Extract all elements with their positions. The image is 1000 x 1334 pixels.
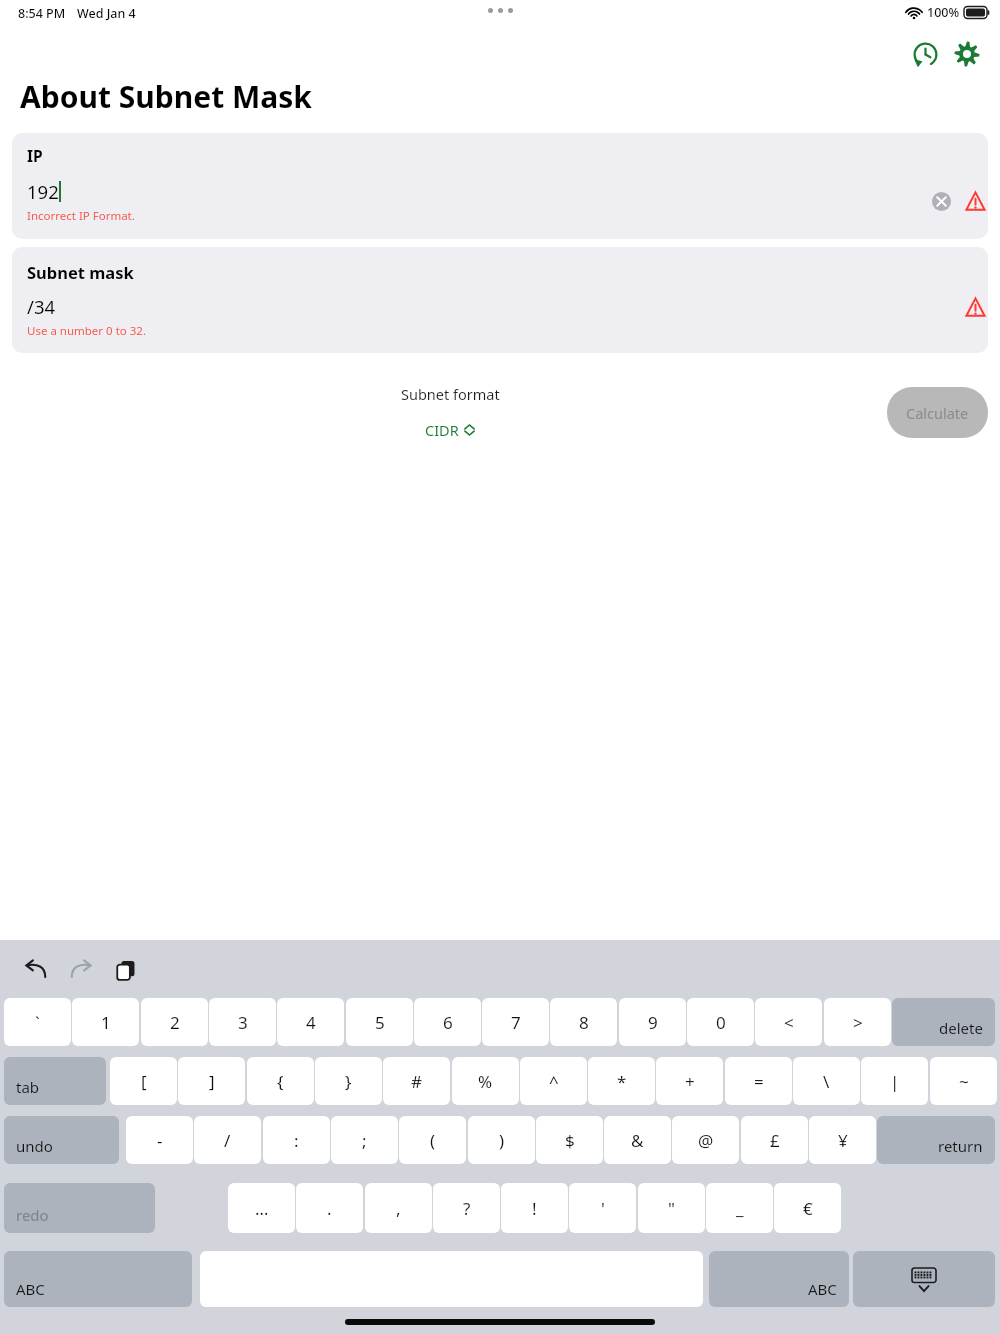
- button[interactable]: ,: [365, 1183, 432, 1233]
- staticText: 4: [306, 1011, 316, 1034]
- staticText: 3: [238, 1011, 248, 1034]
- button[interactable]: €: [774, 1183, 841, 1233]
- button[interactable]: ): [468, 1116, 535, 1164]
- button[interactable]: Redo: [63, 952, 99, 988]
- button[interactable]: 4: [277, 998, 344, 1046]
- staticText: 192: [27, 179, 59, 204]
- button[interactable]: #: [383, 1057, 450, 1105]
- button[interactable]: delete: [892, 998, 995, 1046]
- staticText: +: [685, 1070, 695, 1093]
- button[interactable]: 8: [550, 998, 617, 1046]
- button[interactable]: *: [588, 1057, 655, 1105]
- button[interactable]: -: [126, 1116, 193, 1164]
- button[interactable]: ;: [331, 1116, 398, 1164]
- staticText: £: [770, 1129, 780, 1152]
- button[interactable]: Paste: [108, 952, 144, 988]
- button[interactable]: ~: [930, 1057, 997, 1105]
- button[interactable]: 1: [72, 998, 139, 1046]
- button[interactable]: Settings: [947, 34, 987, 74]
- button[interactable]: :: [263, 1116, 330, 1164]
- button[interactable]: Undo: [18, 952, 54, 988]
- button[interactable]: }: [315, 1057, 382, 1105]
- staticText: Calculate: [906, 403, 969, 423]
- staticText: 9: [648, 1011, 658, 1034]
- button[interactable]: ^: [520, 1057, 587, 1105]
- button[interactable]: redo: [4, 1183, 155, 1233]
- button[interactable]: Subnet mask: [12, 247, 988, 353]
- button[interactable]: undo: [4, 1116, 119, 1164]
- button[interactable]: 2: [141, 998, 208, 1046]
- staticText: 1: [101, 1011, 111, 1034]
- staticText: Incorrect IP Format.: [27, 208, 135, 224]
- button[interactable]: (: [399, 1116, 466, 1164]
- button[interactable]: >: [824, 998, 891, 1046]
- staticText: -: [157, 1129, 163, 1152]
- button[interactable]: ¥: [809, 1116, 876, 1164]
- staticText: Subnet mask: [27, 261, 134, 283]
- button[interactable]: \: [793, 1057, 860, 1105]
- button[interactable]: 6: [414, 998, 481, 1046]
- button[interactable]: 3: [209, 998, 276, 1046]
- staticText: }: [345, 1070, 352, 1093]
- staticText: ": [668, 1197, 675, 1220]
- button[interactable]: tab: [4, 1057, 106, 1105]
- other: Subnet mask error: [954, 286, 988, 328]
- staticText: .: [327, 1197, 332, 1220]
- button[interactable]: &: [604, 1116, 671, 1164]
- button[interactable]: 0: [687, 998, 754, 1046]
- button[interactable]: !: [501, 1183, 568, 1233]
- staticText: {: [277, 1070, 284, 1093]
- button[interactable]: £: [741, 1116, 808, 1164]
- button[interactable]: 9: [619, 998, 686, 1046]
- button[interactable]: $: [536, 1116, 603, 1164]
- button[interactable]: …: [228, 1183, 295, 1233]
- staticText: ': [601, 1197, 605, 1220]
- staticText: <: [784, 1011, 794, 1034]
- button[interactable]: `: [4, 998, 71, 1046]
- staticText: 2: [170, 1011, 180, 1034]
- button[interactable]: <: [755, 998, 822, 1046]
- button[interactable]: ABC: [4, 1251, 192, 1307]
- staticText: ]: [209, 1070, 215, 1093]
- staticText: 100%: [927, 4, 960, 21]
- staticText: /: [224, 1129, 231, 1152]
- button[interactable]: =: [725, 1057, 792, 1105]
- staticText: /34: [27, 294, 56, 319]
- staticText: delete: [939, 1018, 983, 1038]
- staticText: ^: [549, 1070, 559, 1093]
- staticText: >: [853, 1011, 863, 1034]
- staticText: 8: [579, 1011, 589, 1034]
- button[interactable]: Hide keyboard: [853, 1251, 995, 1307]
- staticText: *: [617, 1070, 627, 1093]
- button[interactable]: History: [905, 34, 945, 74]
- button[interactable]: .: [296, 1183, 363, 1233]
- button[interactable]: {: [247, 1057, 314, 1105]
- button[interactable]: @: [672, 1116, 739, 1164]
- staticText: [: [141, 1070, 147, 1093]
- button[interactable]: IP: [12, 133, 988, 239]
- button[interactable]: ': [569, 1183, 636, 1233]
- button[interactable]: /: [194, 1116, 261, 1164]
- staticText: $: [565, 1129, 575, 1152]
- staticText: IP: [27, 145, 43, 166]
- staticText: tab: [16, 1077, 40, 1097]
- button[interactable]: ABC: [709, 1251, 849, 1307]
- button[interactable]: 5: [346, 998, 413, 1046]
- button[interactable]: |: [861, 1057, 928, 1105]
- button[interactable]: +: [656, 1057, 723, 1105]
- button[interactable]: ?: [433, 1183, 500, 1233]
- button[interactable]: ": [638, 1183, 705, 1233]
- button[interactable]: 7: [482, 998, 549, 1046]
- button[interactable]: CIDR: [419, 418, 481, 442]
- button[interactable]: Clear IP: [920, 180, 962, 222]
- button[interactable]: ]: [178, 1057, 245, 1105]
- button[interactable]: %: [452, 1057, 519, 1105]
- button[interactable]: return: [877, 1116, 995, 1164]
- staticText: @: [698, 1129, 714, 1152]
- staticText: Wed Jan 4: [77, 5, 136, 22]
- staticText: 8:54 PM: [18, 5, 66, 22]
- button[interactable]: _: [706, 1183, 773, 1233]
- button[interactable]: Calculate: [887, 387, 988, 438]
- button[interactable]: [: [110, 1057, 177, 1105]
